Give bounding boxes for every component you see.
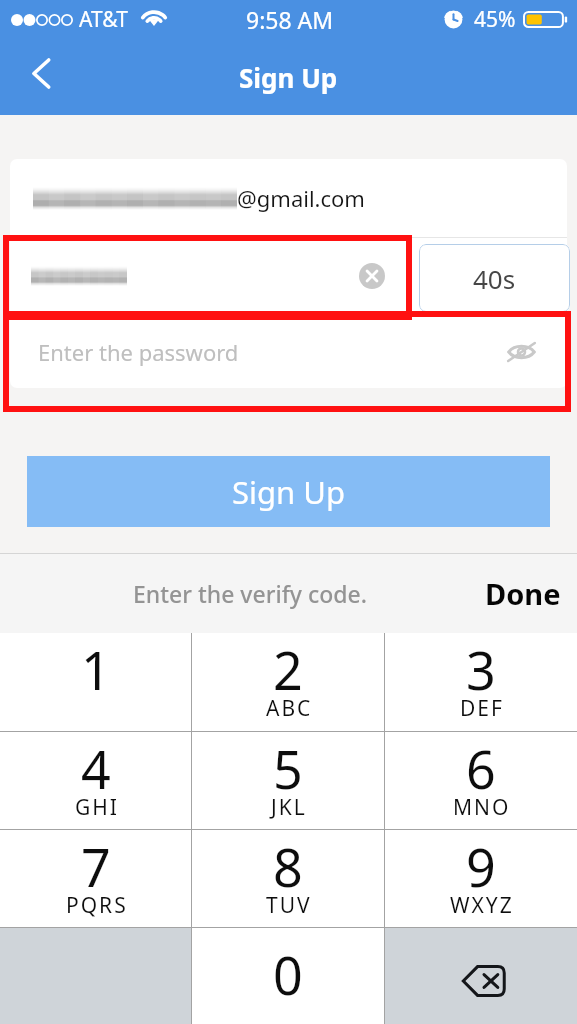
staticText: 9:58 AM — [246, 4, 334, 35]
staticText: @gmail.com — [237, 183, 365, 213]
button[interactable]: 8 — [192, 830, 384, 928]
staticText: 6 — [466, 733, 496, 804]
staticText: 3 — [466, 634, 496, 705]
staticText: GHI — [75, 793, 119, 822]
staticText: 7 — [81, 831, 111, 902]
button[interactable]: 4 — [0, 732, 191, 830]
staticText: TUV — [266, 891, 312, 920]
staticText: DEF — [460, 694, 504, 723]
button[interactable]: 6 — [385, 732, 577, 830]
staticText: 8 — [273, 831, 303, 902]
staticText: 2 — [273, 634, 303, 705]
button[interactable]: Show password — [501, 332, 541, 372]
button[interactable]: Sign Up — [27, 456, 550, 527]
staticText: JKL — [271, 793, 307, 822]
staticText: PQRS — [66, 891, 128, 920]
staticText: 4 — [81, 733, 111, 804]
button[interactable]: Enter the password — [10, 315, 567, 388]
staticText: 1 — [81, 634, 111, 705]
staticText: ABC — [266, 694, 313, 723]
button[interactable]: 7 — [0, 830, 191, 928]
staticText: AT&T — [79, 5, 128, 34]
button[interactable]: Delete — [385, 928, 577, 1024]
button[interactable]: 40s — [419, 244, 570, 312]
button[interactable]: Back — [18, 50, 64, 96]
button[interactable]: Clear — [10, 238, 567, 314]
button[interactable]: Done — [485, 574, 561, 613]
button[interactable]: 1 — [0, 633, 191, 732]
button[interactable]: Clear — [354, 258, 390, 294]
button[interactable]: 0 — [192, 928, 384, 1024]
button[interactable]: 3 — [385, 633, 577, 732]
button[interactable]: @gmail.com — [10, 159, 567, 237]
staticText: 0 — [273, 939, 303, 1010]
staticText: 40s — [473, 261, 516, 296]
button[interactable]: 5 — [192, 732, 384, 830]
button[interactable]: 2 — [192, 633, 384, 732]
staticText: MNO — [453, 793, 511, 822]
staticText: Done — [485, 574, 561, 613]
staticText: WXYZ — [450, 891, 514, 920]
button[interactable]: 9 — [385, 830, 577, 928]
staticText: Enter the password — [38, 337, 239, 367]
staticText: Sign Up — [239, 60, 338, 95]
staticText: 5 — [273, 733, 303, 804]
staticText: 45% — [474, 5, 516, 34]
staticText: 9 — [466, 831, 496, 902]
staticText: Sign Up — [232, 471, 346, 513]
staticText: Enter the verify code. — [133, 578, 368, 609]
